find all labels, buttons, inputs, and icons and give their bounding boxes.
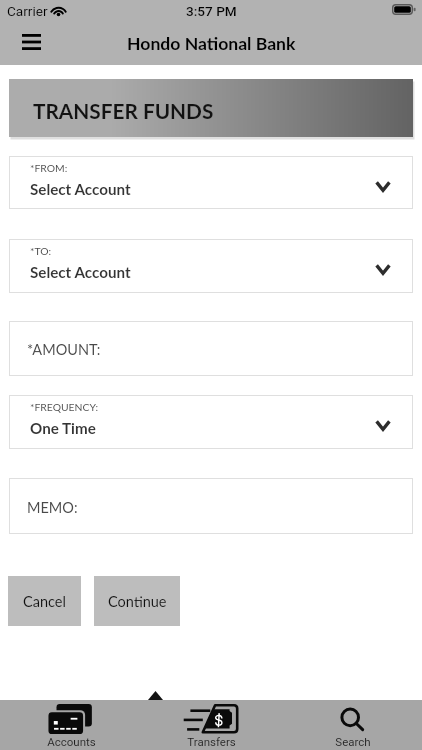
staticText: Hondo National Bank [127,33,296,54]
button[interactable]: Search [281,700,422,750]
staticText: TRANSFER FUNDS [33,98,214,123]
staticText: Continue [108,593,167,610]
staticText: *AMOUNT: [27,341,101,358]
button[interactable]: *FREQUENCY: [9,395,413,449]
button[interactable]: Continue [94,576,180,626]
staticText: Search [335,735,371,748]
button[interactable]: Accounts [0,700,140,750]
staticText: Cancel [23,593,66,610]
staticText: 3:57 PM [186,3,237,19]
staticText: Accounts [47,735,96,748]
staticText: *TO: [30,245,52,257]
staticText: Transfers [187,735,236,748]
staticText: *FREQUENCY: [30,401,99,413]
button[interactable]: *TO: [9,239,413,293]
staticText: One Time [30,419,96,437]
staticText: Select Account [30,180,131,198]
button[interactable]: Transfers [140,700,281,750]
other: Transfers [183,704,239,734]
other: Accounts [42,704,98,734]
other: Search [324,704,380,734]
button[interactable]: *AMOUNT: [9,321,413,376]
button[interactable]: MEMO: [9,478,413,534]
button[interactable]: *FROM: [9,156,413,209]
staticText: MEMO: [27,499,78,516]
staticText: Carrier [7,3,48,19]
button[interactable]: Cancel [8,576,81,626]
staticText: *FROM: [30,162,68,174]
button[interactable]: Open navigation menu [13,27,49,57]
staticText: Select Account [30,263,131,281]
